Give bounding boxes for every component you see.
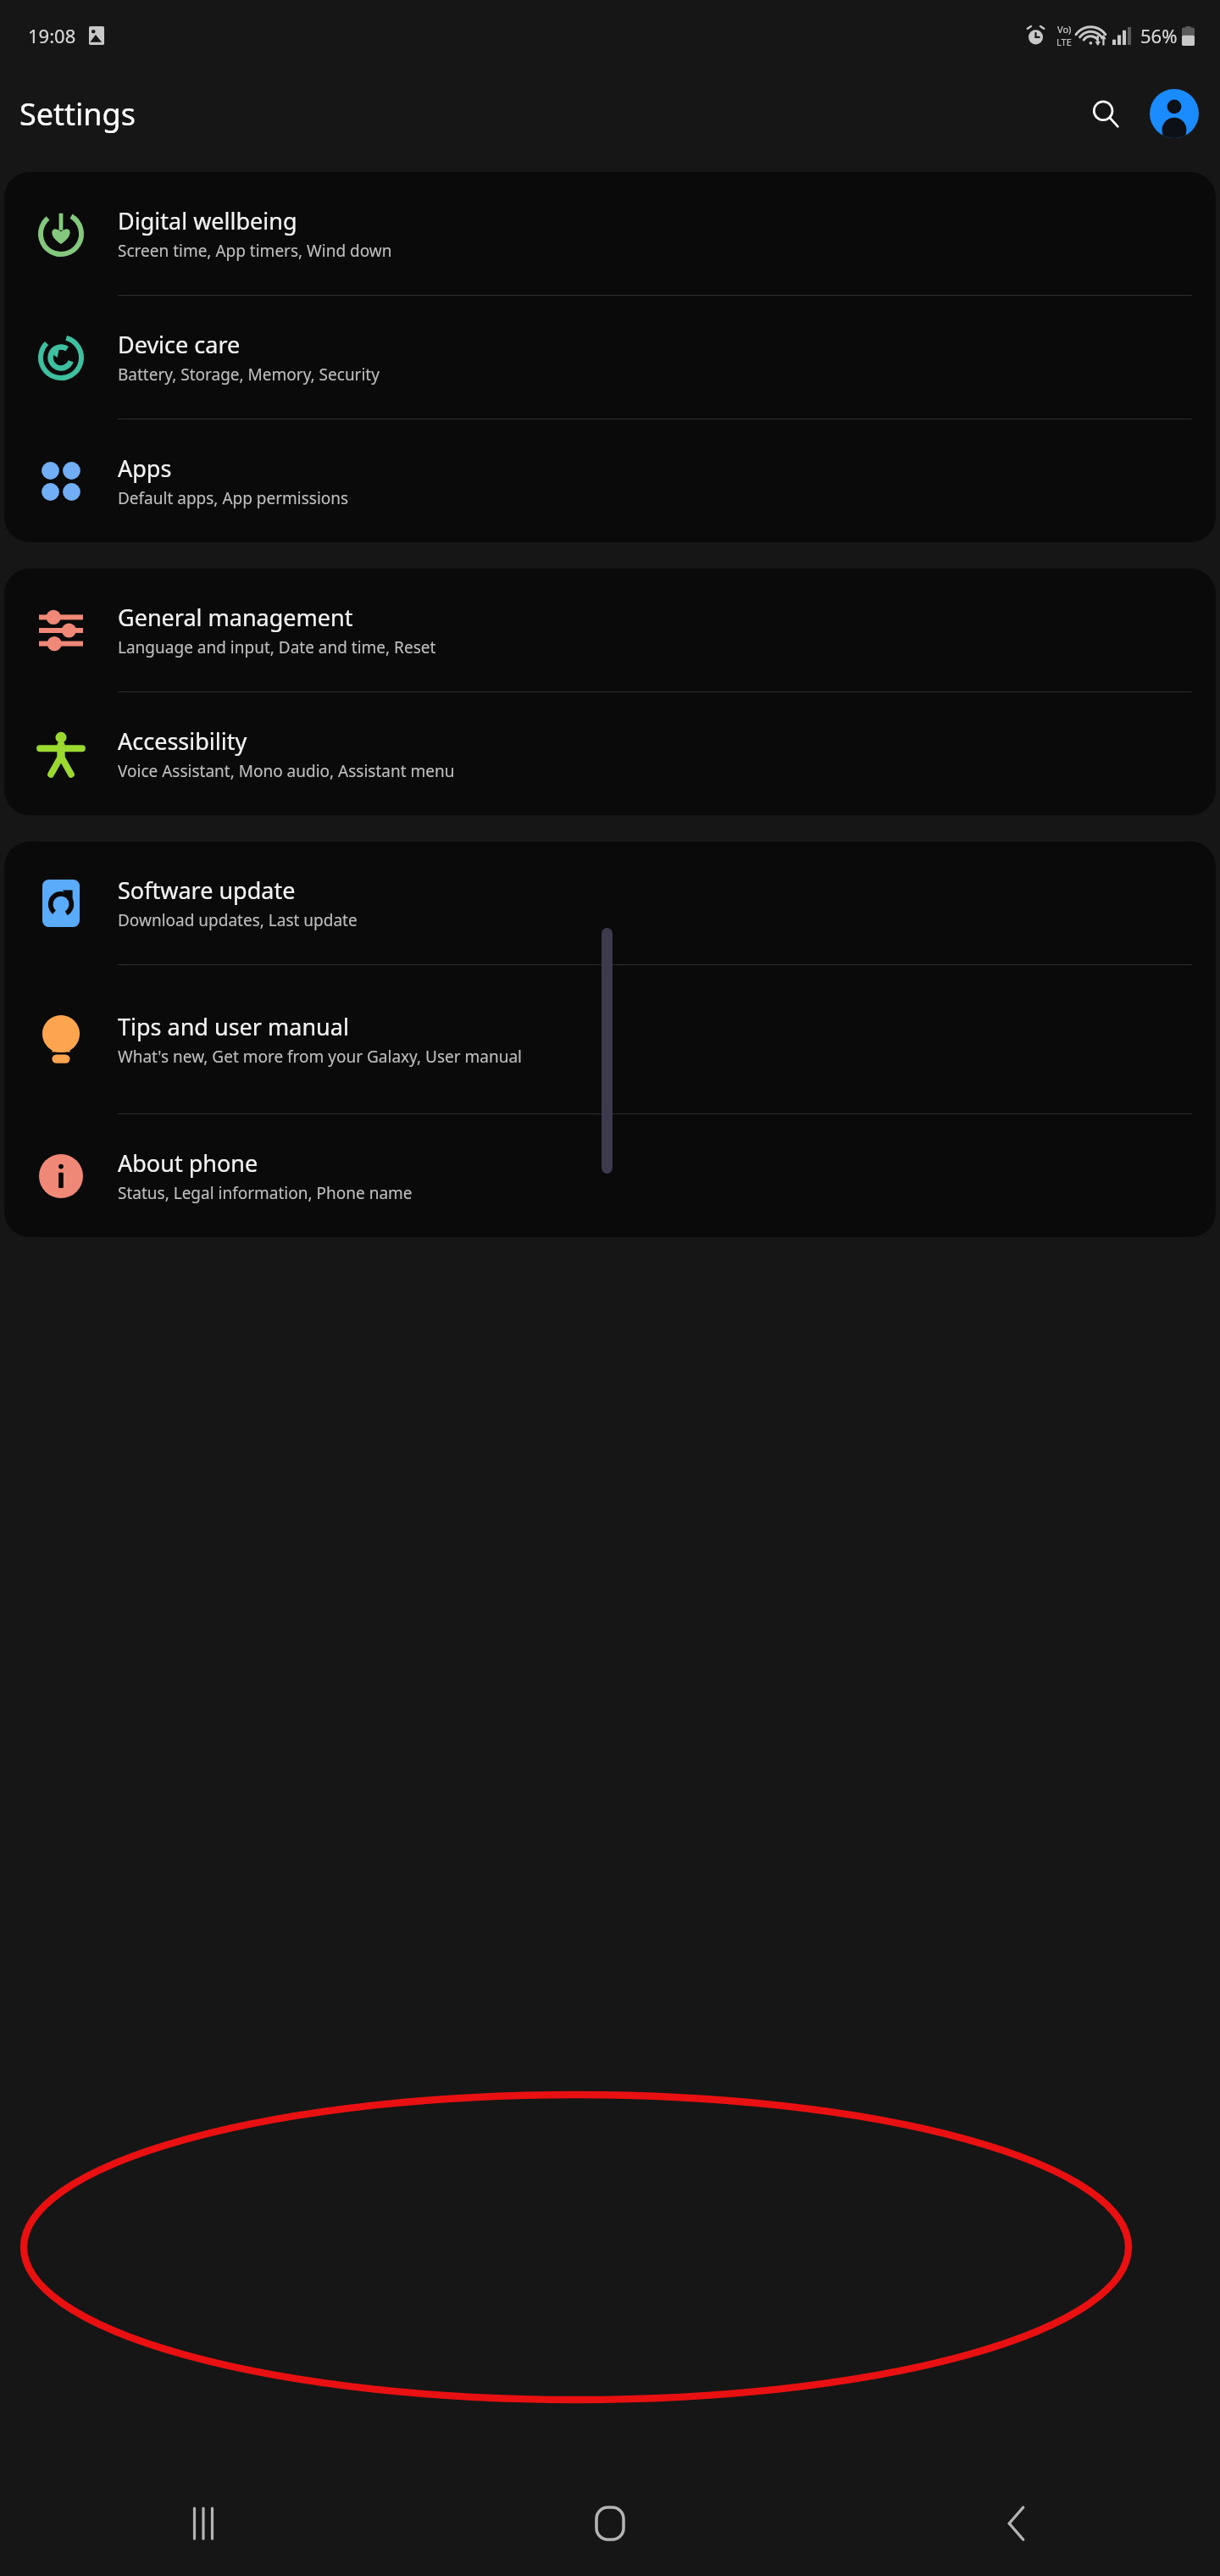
button[interactable]: Account	[1150, 89, 1199, 138]
staticText: Software update	[118, 874, 296, 906]
staticText: Digital wellbeing	[118, 205, 297, 236]
button[interactable]: Search	[1080, 88, 1131, 139]
staticText: Status, Legal information, Phone name	[118, 1182, 413, 1204]
staticText: Device care	[118, 329, 241, 360]
staticText: Download updates, Last update	[118, 909, 358, 931]
staticText: Language and input, Date and time, Reset	[118, 636, 436, 658]
staticText: General management	[118, 602, 353, 633]
staticText: Battery, Storage, Memory, Security	[118, 364, 380, 386]
staticText: What's new, Get more from your Galaxy, U…	[118, 1046, 523, 1068]
staticText: 19:08	[28, 23, 76, 48]
staticText: Vo)	[1057, 23, 1072, 36]
staticText: Settings	[19, 93, 136, 135]
button[interactable]: Device care	[4, 296, 1216, 419]
button[interactable]: Tips and user manual	[4, 965, 1216, 1113]
staticText: Accessibility	[118, 725, 247, 757]
staticText: Voice Assistant, Mono audio, Assistant m…	[118, 760, 455, 782]
staticText: About phone	[118, 1147, 258, 1179]
staticText: LTE	[1056, 36, 1072, 48]
button[interactable]: Digital wellbeing	[4, 172, 1216, 295]
button[interactable]: Back	[813, 2470, 1220, 2576]
button[interactable]: Accessibility	[4, 692, 1216, 815]
staticText: Screen time, App timers, Wind down	[118, 240, 392, 262]
button[interactable]: Apps	[4, 419, 1216, 542]
staticText: Apps	[118, 452, 172, 484]
staticText: 56%	[1140, 23, 1178, 48]
button[interactable]: General management	[4, 569, 1216, 691]
staticText: Default apps, App permissions	[118, 487, 349, 509]
button[interactable]: About phone	[4, 1114, 1216, 1237]
staticText: Tips and user manual	[118, 1011, 349, 1042]
button[interactable]: Software update	[4, 841, 1216, 964]
button[interactable]: Recents	[0, 2470, 407, 2576]
button[interactable]: Home	[407, 2470, 813, 2576]
